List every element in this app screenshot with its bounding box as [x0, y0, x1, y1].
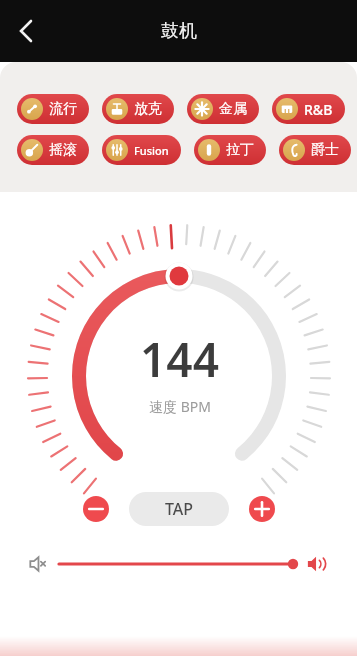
button[interactable]: Volume [59, 552, 297, 576]
button[interactable]: 放克 [102, 94, 174, 124]
button[interactable]: TAP [129, 492, 229, 526]
button[interactable]: 拉丁 [194, 135, 266, 165]
staticText: 速度 BPM [149, 397, 211, 416]
button[interactable]: Mute [26, 552, 50, 576]
staticText: 摇滚 [49, 141, 77, 159]
button[interactable]: 金属 [187, 94, 259, 124]
button[interactable]: Decrease tempo [83, 496, 109, 522]
staticText: TAP [165, 498, 194, 520]
staticText: 流行 [49, 100, 77, 118]
button[interactable]: 爵士 [279, 135, 351, 165]
staticText: 爵士 [311, 141, 339, 159]
button[interactable]: Fusion [102, 135, 181, 165]
button[interactable]: R&B [272, 94, 345, 124]
staticText: 拉丁 [226, 141, 254, 159]
button[interactable]: Volume up [305, 552, 329, 576]
staticText: 金属 [219, 100, 247, 118]
staticText: 144 [140, 328, 219, 391]
button[interactable]: 流行 [17, 94, 89, 124]
staticText: 鼓机 [161, 20, 197, 43]
staticText: 放克 [134, 100, 162, 118]
button[interactable]: 摇滚 [17, 135, 89, 165]
button[interactable]: Increase tempo [249, 496, 275, 522]
button[interactable]: Back [4, 9, 48, 53]
staticText: R&B [304, 100, 333, 119]
staticText: Fusion [134, 143, 169, 158]
